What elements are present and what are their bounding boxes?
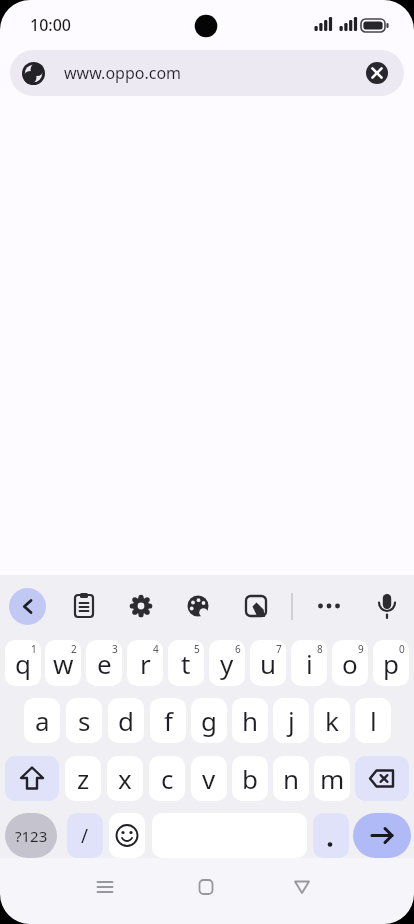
button[interactable]: l	[355, 698, 391, 743]
staticText: i	[306, 646, 313, 681]
button[interactable]: e	[86, 640, 122, 686]
staticText: z	[77, 761, 90, 796]
button[interactable]	[121, 586, 161, 626]
button[interactable]: m	[314, 756, 350, 801]
button[interactable]: /	[67, 813, 103, 858]
staticText: q	[15, 646, 31, 681]
staticText: /	[81, 823, 89, 849]
button[interactable]: u	[250, 640, 286, 686]
staticText: n	[283, 761, 300, 796]
button[interactable]: s	[66, 698, 102, 743]
button[interactable]: r	[127, 640, 163, 686]
staticText: 2	[71, 642, 77, 656]
button[interactable]: v	[191, 756, 227, 801]
button[interactable]	[109, 813, 145, 858]
button[interactable]: o	[332, 640, 368, 686]
button[interactable]	[355, 756, 409, 801]
button[interactable]: d	[108, 698, 144, 743]
button[interactable]: a	[24, 698, 60, 743]
button[interactable]	[276, 858, 414, 924]
button[interactable]: k	[314, 698, 350, 743]
button[interactable]: ?123	[5, 813, 57, 858]
staticText: 9	[358, 642, 364, 656]
staticText: l	[370, 703, 377, 738]
button[interactable]: q	[5, 640, 41, 686]
button[interactable]: t	[168, 640, 204, 686]
staticText: t	[181, 646, 191, 681]
staticText: w	[53, 646, 74, 681]
button[interactable]: p	[373, 640, 409, 686]
button[interactable]: h	[232, 698, 268, 743]
button[interactable]	[9, 588, 46, 625]
staticText: 5	[194, 642, 200, 656]
button[interactable]	[309, 586, 349, 626]
staticText: h	[242, 703, 259, 738]
button[interactable]	[64, 586, 104, 626]
staticText: www.oppo.com	[64, 62, 182, 84]
button[interactable]: x	[107, 756, 143, 801]
staticText: v	[202, 761, 216, 796]
staticText: u	[260, 646, 277, 681]
button[interactable]: y	[209, 640, 245, 686]
button[interactable]	[366, 62, 388, 84]
staticText: c	[161, 761, 174, 796]
button[interactable]: n	[273, 756, 309, 801]
staticText: d	[118, 703, 134, 738]
staticText: j	[288, 703, 295, 738]
staticText: f	[164, 703, 173, 738]
button[interactable]	[367, 586, 407, 626]
button[interactable]	[353, 813, 411, 858]
button[interactable]: g	[191, 698, 227, 743]
button[interactable]: c	[149, 756, 185, 801]
button[interactable]: w	[45, 640, 81, 686]
button[interactable]: j	[273, 698, 309, 743]
staticText: y	[220, 646, 234, 681]
staticText: s	[78, 703, 91, 738]
staticText: k	[325, 703, 339, 738]
staticText: 1	[31, 642, 37, 656]
staticText: 0	[399, 642, 405, 656]
staticText: 8	[317, 642, 323, 656]
staticText: e	[97, 646, 112, 681]
staticText: 10:00	[30, 14, 71, 36]
staticText: m	[320, 761, 345, 796]
staticText: 4	[153, 642, 159, 656]
staticText: 6	[235, 642, 241, 656]
button[interactable]	[5, 756, 59, 801]
button[interactable]	[313, 813, 349, 858]
staticText: r	[140, 646, 151, 681]
staticText: g	[201, 703, 217, 738]
staticText: 3	[112, 642, 118, 656]
staticText: o	[342, 646, 358, 681]
staticText: a	[35, 703, 50, 738]
staticText: x	[118, 761, 132, 796]
staticText: ?123	[15, 826, 48, 846]
button[interactable]	[178, 586, 218, 626]
button[interactable]	[138, 858, 276, 924]
button[interactable]	[236, 586, 276, 626]
button[interactable]: f	[150, 698, 186, 743]
staticText: p	[383, 646, 399, 681]
button[interactable]: i	[291, 640, 327, 686]
button[interactable]	[0, 858, 138, 924]
button[interactable]: z	[65, 756, 101, 801]
button[interactable]: www.oppo.com	[10, 50, 404, 96]
staticText: b	[242, 761, 258, 796]
button[interactable]: b	[232, 756, 268, 801]
staticText: 7	[276, 642, 282, 656]
